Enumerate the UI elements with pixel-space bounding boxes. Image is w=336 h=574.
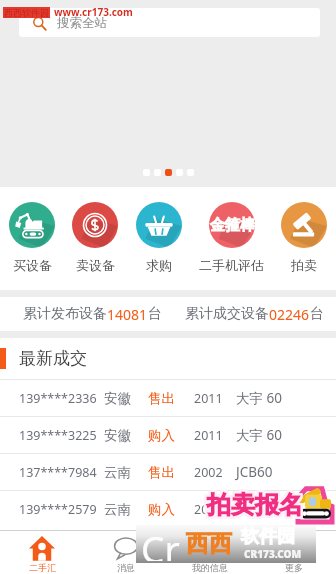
staticText: 139****3225	[19, 427, 97, 444]
staticText: 拍卖报名	[206, 492, 302, 522]
button[interactable]: 139****2336	[0, 380, 336, 416]
staticText: 台	[310, 305, 324, 323]
button[interactable]: 搜索全站	[19, 8, 320, 37]
button[interactable]: 二手汇	[0, 531, 84, 574]
button[interactable]: 拍卖	[281, 187, 327, 290]
button[interactable]: 求购	[136, 187, 182, 290]
button[interactable]: 137****7984	[0, 454, 336, 490]
staticText: 拍卖报名	[207, 489, 303, 519]
staticText: 拍卖报名	[205, 490, 301, 520]
button[interactable]: 拍卖报名	[203, 484, 336, 524]
button[interactable]: 卖设备	[72, 187, 118, 290]
staticText: 拍卖	[291, 257, 317, 273]
staticText: 大宇 60	[236, 426, 282, 444]
staticText: 拍卖报名	[206, 490, 302, 520]
staticText: 拍卖报名	[207, 492, 303, 522]
staticText: 拍卖报名	[205, 491, 301, 521]
staticText: 137****7984	[19, 464, 97, 481]
staticText: JCB60	[236, 463, 273, 481]
staticText: CR173.COM	[244, 547, 302, 561]
staticText: 拍卖报名	[205, 492, 301, 522]
staticText: 2011	[194, 427, 223, 444]
button[interactable]: 更多	[252, 531, 336, 574]
staticText: 二手汇	[29, 562, 56, 573]
staticText: 拍卖报名	[208, 491, 304, 521]
staticText: 拍卖报名	[206, 488, 302, 518]
staticText: 更多	[285, 562, 303, 573]
staticText: 拍卖报名	[209, 491, 305, 521]
button[interactable]: 累计成交设备	[173, 297, 336, 331]
staticText: 安徽	[104, 390, 131, 407]
staticText: 购入	[148, 427, 175, 444]
staticText: 拍卖报名	[209, 488, 305, 518]
staticText: 金箍棒	[210, 216, 255, 235]
staticText: 最新成交	[19, 348, 87, 369]
staticText: 拍卖报名	[208, 492, 304, 522]
button[interactable]: 累计发布设备	[11, 297, 173, 331]
staticText: 拍卖报名	[208, 488, 304, 518]
staticText: 拍卖报名	[207, 488, 303, 518]
staticText: 拍卖报名	[206, 489, 302, 519]
staticText: 139****2336	[19, 390, 97, 407]
staticText: 西西软件园	[4, 7, 49, 18]
button[interactable]: 139****3225	[0, 417, 336, 453]
staticText: 西西	[186, 529, 232, 558]
staticText: 软件园	[241, 525, 295, 548]
button[interactable]: 消息	[84, 531, 168, 574]
staticText: 二手机评估	[199, 257, 264, 273]
button[interactable]: 金箍棒	[199, 187, 264, 290]
staticText: 累计成交设备	[185, 305, 269, 323]
staticText: 拍卖报名	[208, 489, 304, 519]
staticText: 拍卖报名	[209, 492, 305, 522]
staticText: 2002	[194, 464, 223, 481]
staticText: 卖设备	[76, 257, 115, 273]
staticText: 拍卖报名	[209, 490, 305, 520]
button[interactable]: 139****2579	[0, 491, 336, 527]
staticText: 我的信息	[192, 562, 228, 573]
staticText: 云南	[104, 464, 131, 481]
staticText: 购入	[148, 501, 175, 518]
staticText: 139****2579	[19, 501, 97, 518]
staticText: www.cr173.com	[54, 5, 133, 19]
staticText: 售出	[148, 464, 175, 481]
staticText: 累计发布设备	[23, 305, 107, 323]
staticText: 云南	[104, 501, 131, 518]
staticText: 拍卖报名	[207, 491, 303, 521]
staticText: 02246	[269, 305, 310, 324]
staticText: 消息	[117, 562, 135, 573]
staticText: 搜索全站	[57, 15, 107, 31]
button[interactable]: 买设备	[9, 187, 55, 290]
button[interactable]: 最新成交	[0, 338, 336, 379]
staticText: 求购	[146, 257, 172, 273]
staticText: 台	[148, 305, 162, 323]
staticText: 拍卖报名	[205, 488, 301, 518]
button[interactable]: 我的信息	[168, 531, 252, 574]
staticText: 售出	[148, 390, 175, 407]
staticText: 安徽	[104, 427, 131, 444]
staticText: 大宇 60	[236, 389, 282, 407]
staticText: 2011	[194, 501, 223, 518]
staticText: 拍卖报名	[208, 490, 304, 520]
staticText: 拍卖报名	[206, 491, 302, 521]
staticText: 拍卖报名	[209, 489, 305, 519]
staticText: 14081	[107, 305, 148, 324]
staticText: 拍卖报名	[207, 490, 303, 520]
staticText: 拍卖报名	[205, 489, 301, 519]
staticText: Cr	[141, 523, 180, 561]
staticText: 买设备	[13, 257, 52, 273]
staticText: 2011	[194, 390, 223, 407]
